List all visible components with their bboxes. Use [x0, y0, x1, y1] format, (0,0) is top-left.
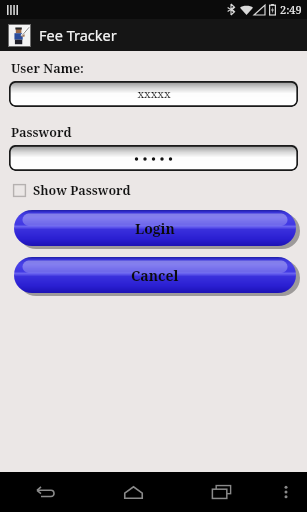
staticText: Fee Tracker: [39, 25, 117, 45]
button[interactable]: Back: [0, 472, 89, 512]
button[interactable]: More options: [265, 472, 307, 512]
staticText: Login: [135, 219, 175, 238]
button[interactable]: [9, 145, 298, 171]
button[interactable]: Home: [89, 472, 177, 512]
button[interactable]: Cancel: [14, 257, 296, 293]
staticText: 2:49: [280, 2, 302, 17]
button[interactable]: xxxxx: [9, 81, 298, 107]
button[interactable]: Recent apps: [177, 472, 265, 512]
staticText: User Name:: [11, 60, 84, 77]
staticText: Show Password: [33, 182, 131, 199]
staticText: Cancel: [131, 266, 179, 285]
button[interactable]: Show Password: [13, 182, 131, 199]
staticText: xxxxx: [137, 86, 171, 102]
staticText: Password: [11, 124, 72, 141]
button[interactable]: Login: [14, 210, 296, 246]
